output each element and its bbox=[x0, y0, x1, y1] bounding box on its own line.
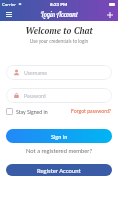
staticText: Register Account bbox=[37, 167, 81, 174]
staticText: Use your credentials to login bbox=[0, 38, 118, 44]
button[interactable]: Sign in bbox=[6, 129, 112, 143]
staticText: 8:23 PM bbox=[50, 1, 68, 7]
staticText: Stay Signed in bbox=[16, 109, 48, 115]
button[interactable]: Username bbox=[6, 65, 112, 80]
button[interactable]: Password bbox=[6, 88, 112, 103]
button[interactable]: Not a registered member? bbox=[0, 147, 118, 154]
button[interactable]: Forgot password? bbox=[71, 108, 112, 114]
button[interactable]: Add bbox=[104, 9, 115, 20]
staticText: Login Account bbox=[40, 10, 78, 19]
button[interactable]: Register Account bbox=[6, 164, 112, 176]
staticText: Username bbox=[24, 70, 48, 76]
staticText: Welcome to Chat bbox=[0, 25, 118, 37]
button[interactable]: Menu bbox=[3, 9, 14, 20]
staticText: Password bbox=[24, 93, 46, 99]
staticText: Carrier bbox=[2, 1, 16, 7]
staticText: Sign in bbox=[51, 133, 68, 140]
button[interactable]: Stay Signed in bbox=[6, 108, 48, 115]
